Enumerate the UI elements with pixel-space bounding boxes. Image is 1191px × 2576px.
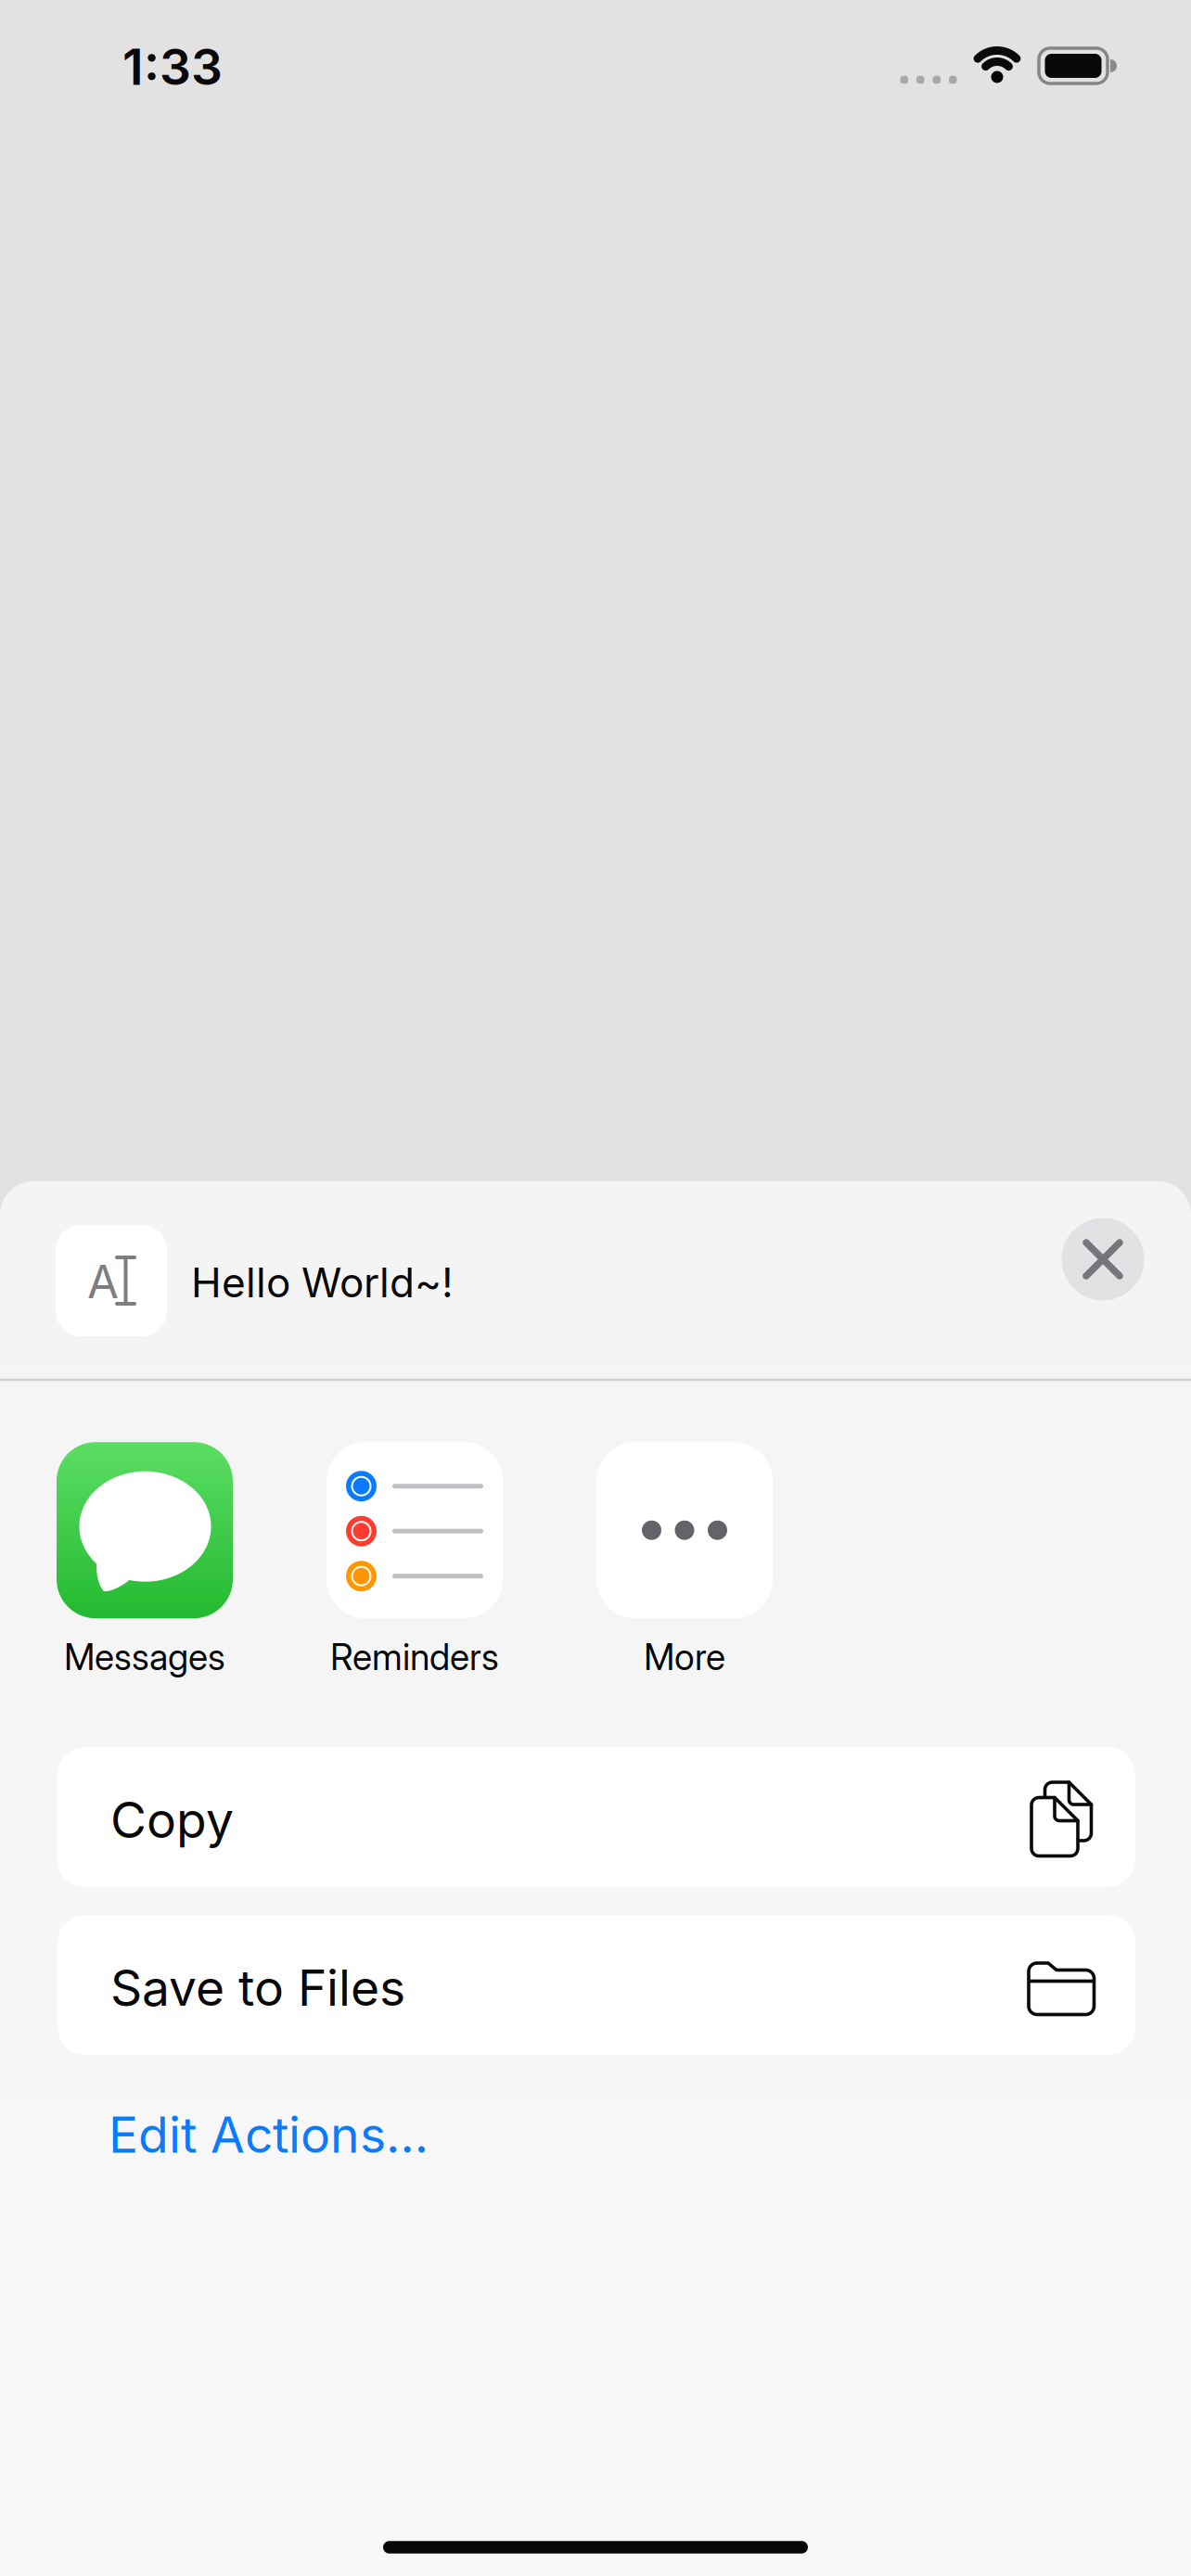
- button[interactable]: Messages: [57, 1442, 233, 1678]
- staticText: A: [87, 1255, 119, 1308]
- staticText: Copy: [110, 1791, 234, 1849]
- button[interactable]: Copy: [58, 1747, 1135, 1887]
- staticText: 1:33: [122, 38, 223, 96]
- staticText: Save to Files: [110, 1958, 405, 2017]
- button[interactable]: Close: [1062, 1218, 1144, 1301]
- button[interactable]: Save to Files: [58, 1915, 1135, 2055]
- staticText: Reminders: [330, 1636, 499, 1678]
- button[interactable]: Reminders: [327, 1442, 503, 1678]
- button[interactable]: More: [596, 1442, 773, 1678]
- staticText: Messages: [64, 1636, 225, 1678]
- staticText: Edit Actions…: [109, 2105, 429, 2164]
- button[interactable]: Edit Actions…: [109, 2105, 758, 2164]
- staticText: More: [644, 1636, 725, 1678]
- staticText: Hello World~!: [191, 1258, 454, 1306]
